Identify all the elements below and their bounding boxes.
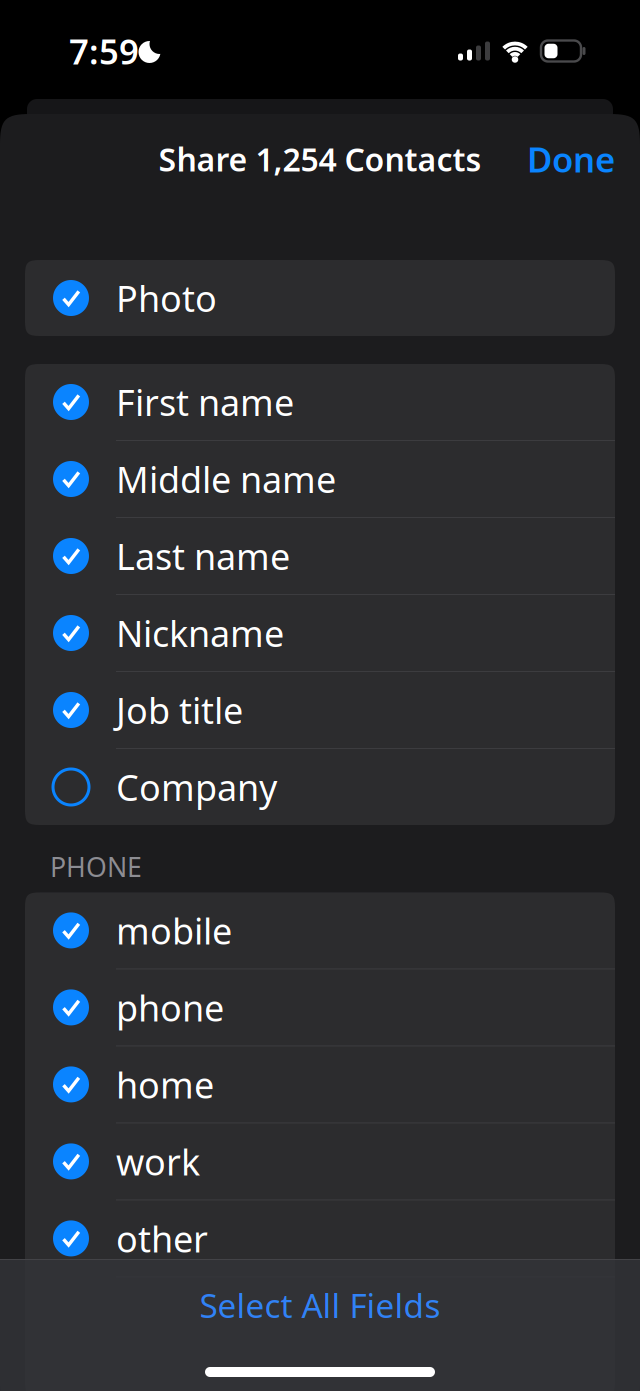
button[interactable]: Company bbox=[25, 749, 615, 825]
button[interactable]: mobile bbox=[25, 892, 615, 968]
button[interactable]: phone bbox=[25, 969, 615, 1045]
button[interactable]: Job title bbox=[25, 672, 615, 748]
button[interactable]: Last name bbox=[25, 518, 615, 594]
button[interactable]: work bbox=[25, 1123, 615, 1199]
button[interactable]: Select All Fields bbox=[199, 1283, 440, 1327]
staticText: Middle name bbox=[116, 455, 336, 503]
staticText: phone bbox=[116, 983, 224, 1031]
staticText: First name bbox=[116, 378, 294, 426]
button[interactable] bbox=[205, 1367, 435, 1377]
button[interactable]: Nickname bbox=[25, 595, 615, 671]
staticText: Nickname bbox=[116, 609, 284, 657]
staticText: Share 1,254 Contacts bbox=[158, 138, 481, 180]
staticText: work bbox=[116, 1137, 200, 1185]
staticText: home bbox=[116, 1060, 214, 1108]
staticText: Last name bbox=[116, 532, 290, 580]
staticText: mobile bbox=[116, 906, 232, 954]
staticText: Done bbox=[527, 136, 615, 182]
staticText: Job title bbox=[116, 686, 243, 734]
staticText: 7:59 bbox=[69, 28, 139, 74]
button[interactable]: Middle name bbox=[25, 441, 615, 517]
button[interactable]: Photo bbox=[25, 260, 615, 336]
staticText: Company bbox=[116, 763, 277, 811]
staticText: other bbox=[116, 1214, 208, 1262]
button[interactable]: home bbox=[25, 1046, 615, 1122]
staticText: Photo bbox=[116, 274, 217, 322]
button[interactable]: First name bbox=[25, 364, 615, 440]
button[interactable]: other bbox=[25, 1200, 615, 1276]
staticText: PHONE bbox=[50, 849, 142, 884]
staticText: Select All Fields bbox=[199, 1283, 440, 1327]
button[interactable]: Done bbox=[527, 136, 615, 182]
